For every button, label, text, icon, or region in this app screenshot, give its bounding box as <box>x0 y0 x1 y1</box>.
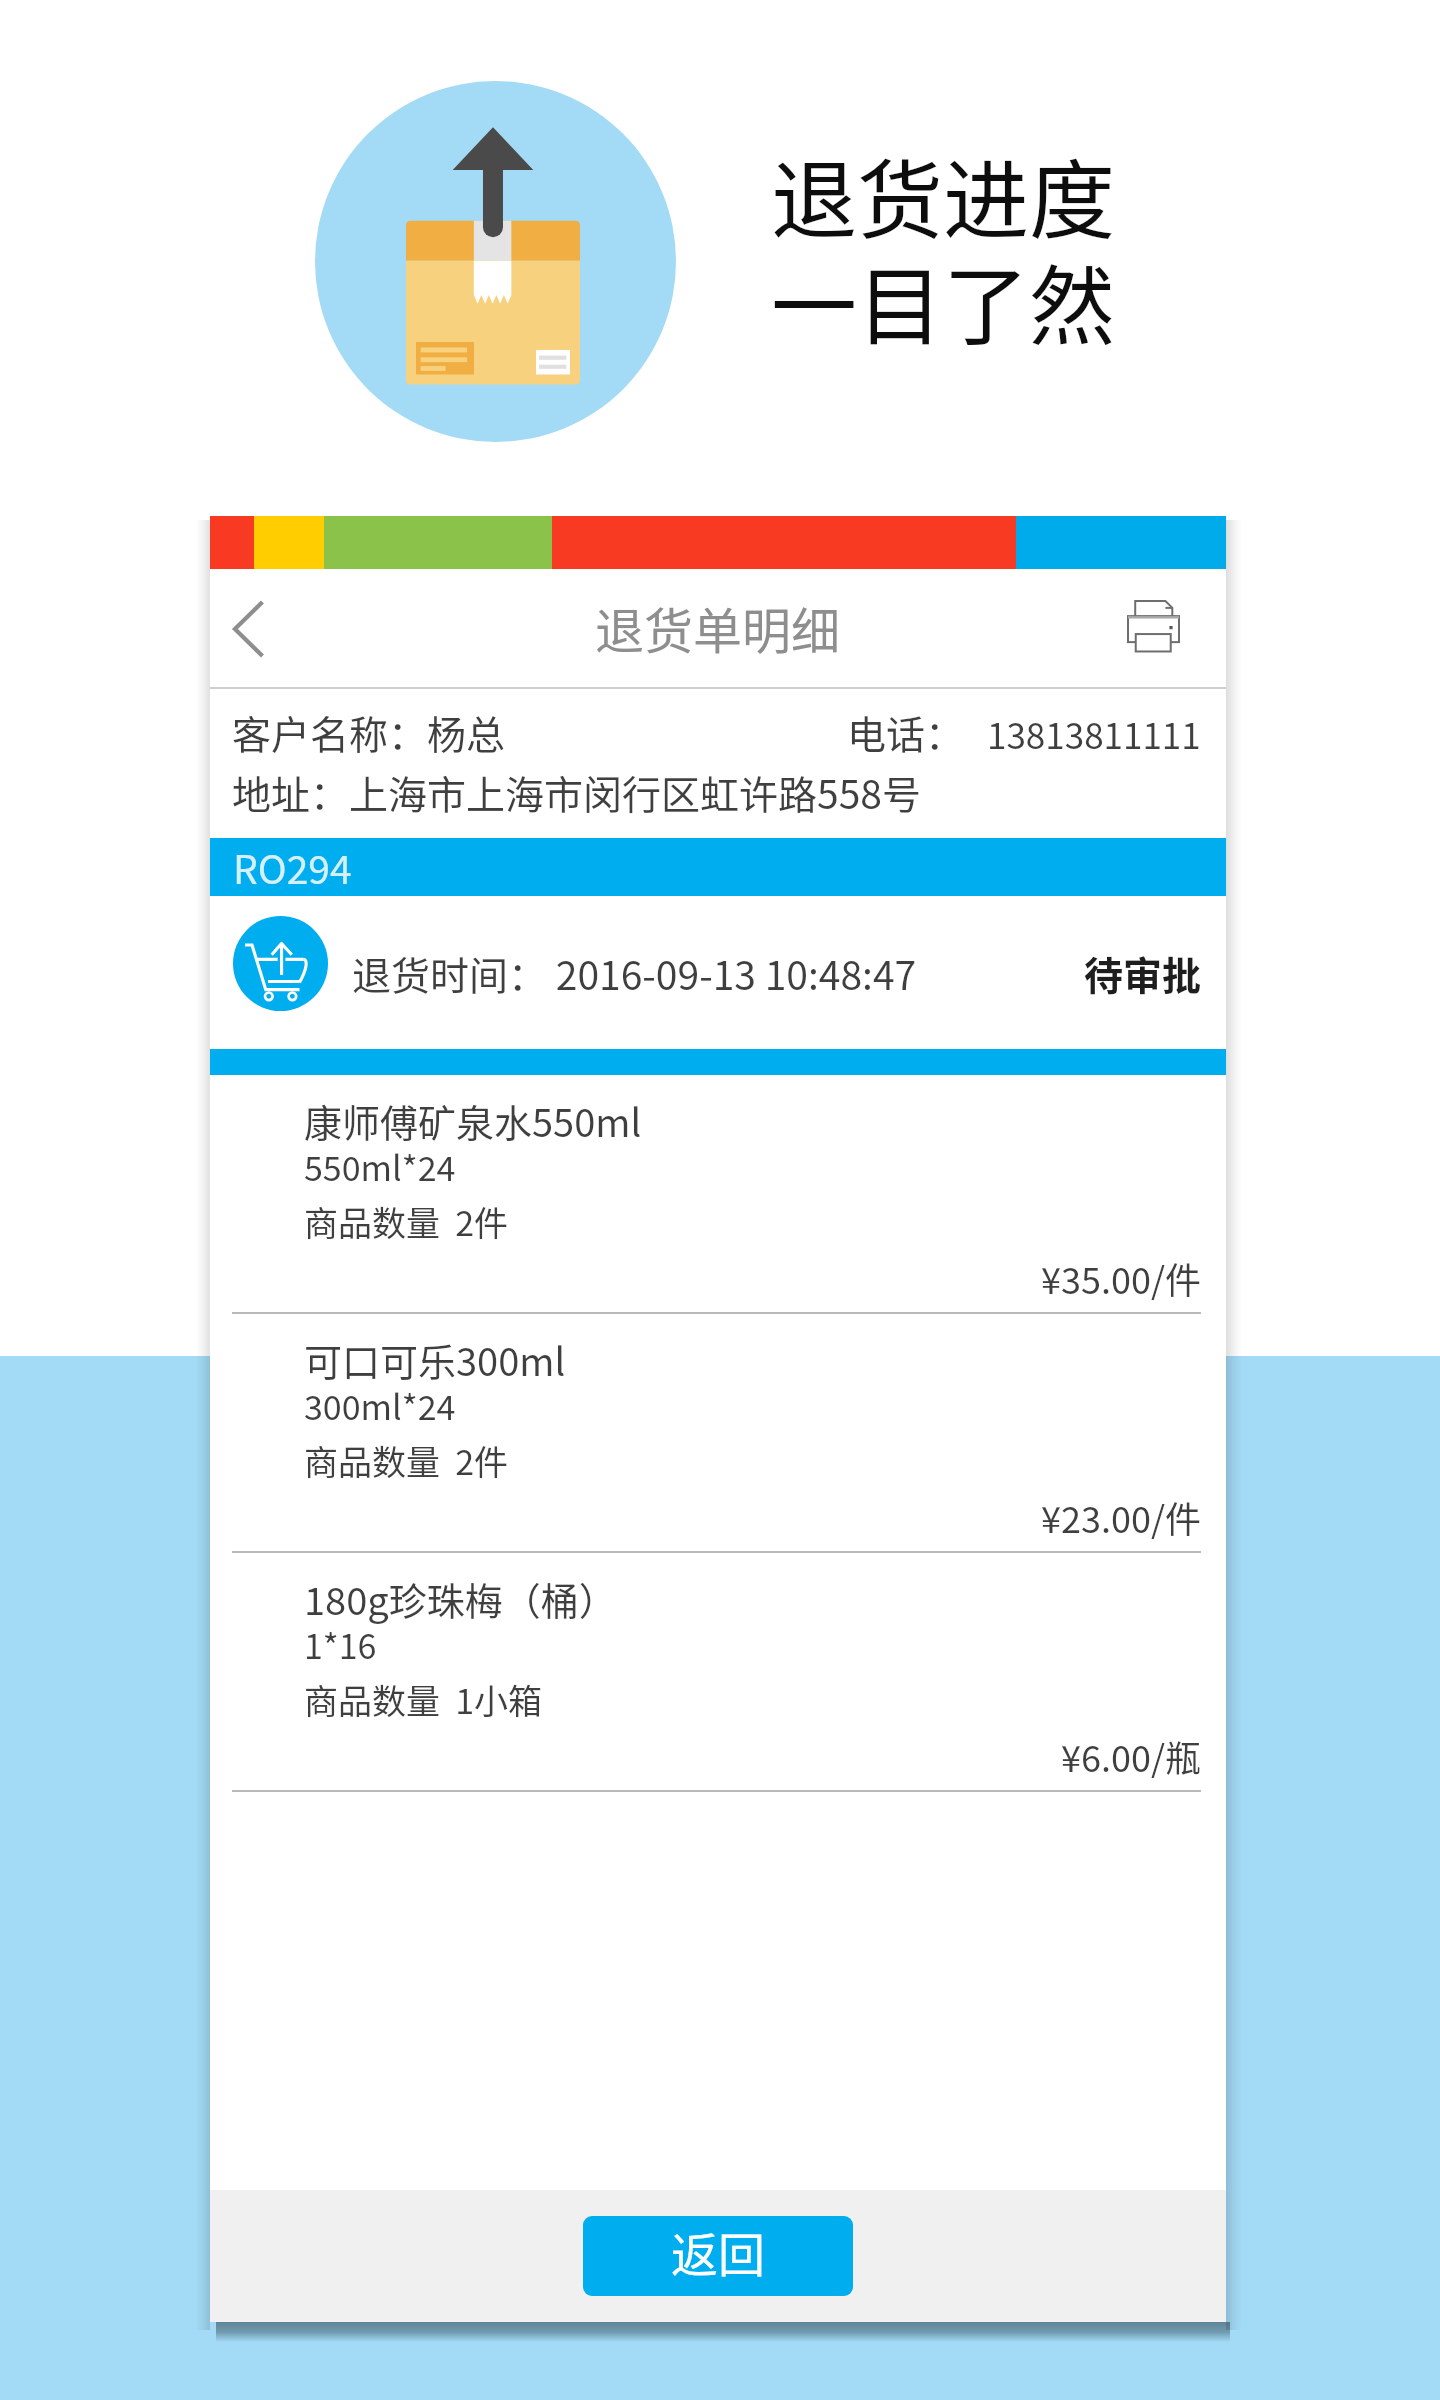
staticText: 返回 <box>671 2217 765 2285</box>
staticText: 退货进度 一目了然 <box>771 132 1115 363</box>
staticText: RO294 <box>233 839 352 895</box>
staticText: 待审批 <box>1084 945 1202 1001</box>
button[interactable]: 返回 <box>583 2216 853 2296</box>
staticText: 550ml*24 <box>304 1142 456 1191</box>
staticText: 300ml*24 <box>304 1381 456 1430</box>
staticText: 180g珍珠梅（桶） <box>304 1571 617 1626</box>
staticText: 康师傅矿泉水550ml <box>304 1093 642 1148</box>
staticText: 电话： <box>847 704 965 760</box>
button[interactable]: 退货时间： 2016-09-13 10:48:47 <box>210 896 1226 1049</box>
staticText: ¥35.00/件 <box>210 1252 1201 1304</box>
staticText: ¥6.00/瓶 <box>210 1730 1201 1782</box>
button[interactable]: Back <box>210 569 318 689</box>
staticText: 退货单明细 <box>595 592 841 663</box>
button[interactable]: 可口可乐300ml <box>210 1314 1226 1553</box>
staticText: 退货时间： 2016-09-13 10:48:47 <box>352 945 917 1001</box>
staticText: 商品数量 2件 <box>304 1436 509 1485</box>
staticText: ¥23.00/件 <box>210 1491 1201 1543</box>
staticText: 商品数量 1小箱 <box>304 1675 543 1724</box>
staticText: 13813811111 <box>987 708 1201 759</box>
button[interactable]: Print <box>1114 569 1226 689</box>
button[interactable]: 康师傅矿泉水550ml <box>210 1075 1226 1314</box>
staticText: 可口可乐300ml <box>304 1332 566 1387</box>
staticText: 客户名称：杨总 <box>232 704 506 760</box>
staticText: 地址：上海市上海市闵行区虹许路558号 <box>232 764 921 820</box>
button[interactable]: 180g珍珠梅（桶） <box>210 1553 1226 1792</box>
staticText: 商品数量 2件 <box>304 1197 509 1246</box>
staticText: 1*16 <box>304 1620 377 1669</box>
